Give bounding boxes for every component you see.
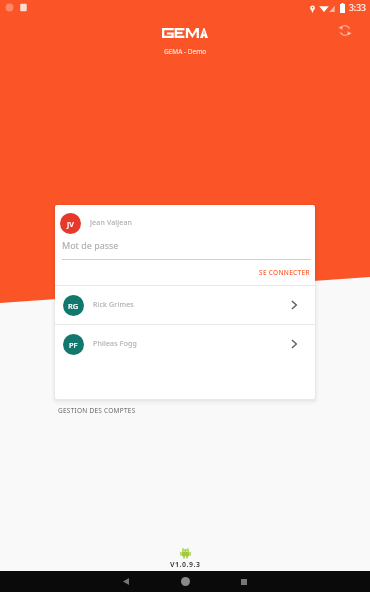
staticText: SE CONNECTER <box>259 268 310 277</box>
staticText: JV <box>67 219 74 229</box>
button[interactable]: Back <box>113 571 139 592</box>
button[interactable]: Recents <box>231 571 257 592</box>
button[interactable]: RG <box>55 286 315 324</box>
staticText: Phileas Fogg <box>93 339 138 349</box>
staticText: RG <box>68 301 79 311</box>
button[interactable]: PF <box>55 325 315 363</box>
staticText: Mot de passe <box>62 239 119 251</box>
button[interactable]: Home <box>172 571 198 592</box>
staticText: Jean Valjean <box>90 218 133 228</box>
button[interactable]: Refresh <box>332 17 358 43</box>
button[interactable]: SE CONNECTER <box>254 263 315 282</box>
staticText: GESTION DES COMPTES <box>58 406 136 415</box>
staticText: 3:33 <box>349 2 366 14</box>
staticText: GEMA - Demo <box>164 47 207 56</box>
staticText: Rick Grimes <box>93 300 134 310</box>
staticText: PF <box>69 340 78 350</box>
staticText: V1.0.9.3 <box>170 560 201 570</box>
